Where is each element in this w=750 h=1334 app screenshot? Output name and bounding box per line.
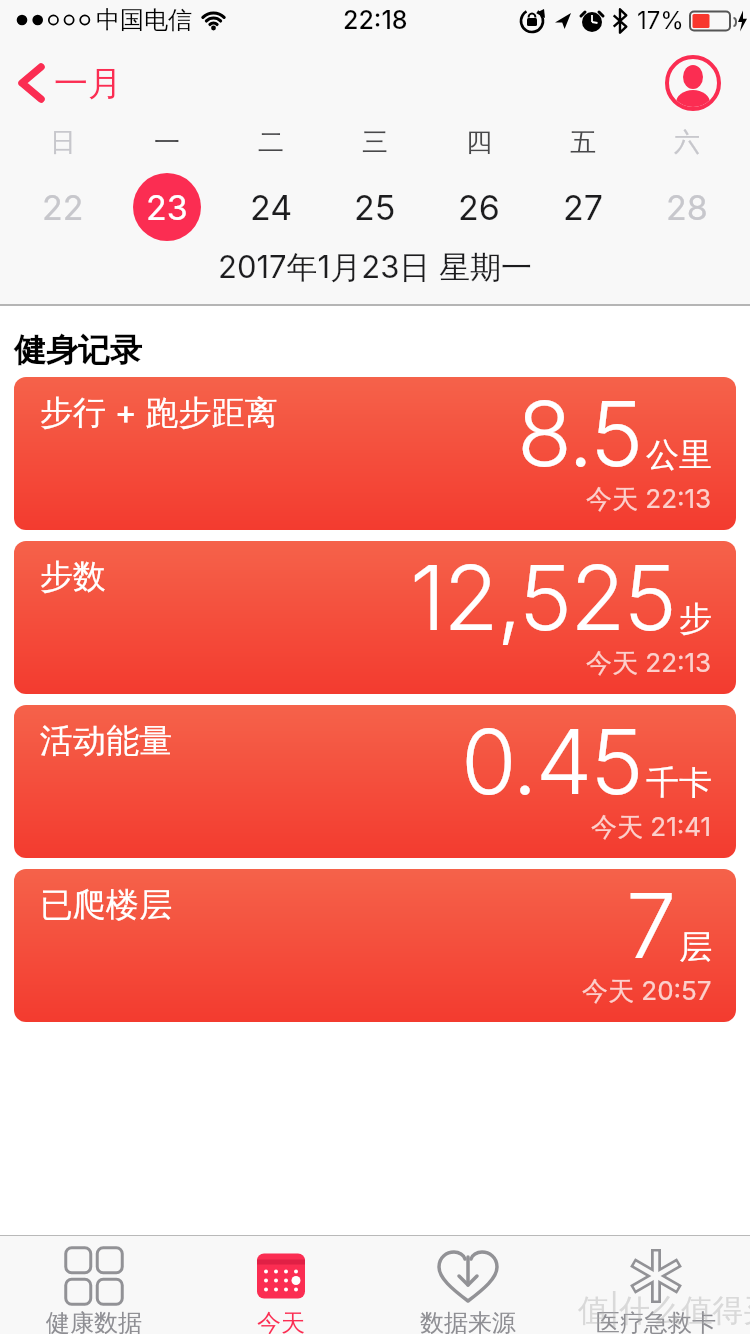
button[interactable]: 已爬楼层: [14, 869, 736, 1022]
staticText: 一月: [54, 62, 122, 105]
button[interactable]: 一月: [18, 58, 122, 108]
button[interactable]: 数据来源: [374, 1236, 562, 1334]
staticText: 四: [466, 126, 492, 158]
staticText: 步: [679, 598, 712, 640]
staticText: 24: [250, 187, 293, 228]
staticText: 28: [666, 187, 708, 228]
staticText: 今天 20:57: [582, 975, 712, 1008]
staticText: 公里: [646, 434, 712, 476]
staticText: 一: [154, 126, 180, 158]
staticText: 22:18: [343, 5, 408, 35]
staticText: 健身记录: [14, 330, 142, 370]
staticText: 25: [354, 187, 396, 228]
button[interactable]: 28: [635, 172, 739, 242]
button[interactable]: 步行 + 跑步距离: [14, 377, 736, 530]
staticText: 活动能量: [40, 720, 172, 762]
staticText: 已爬楼层: [40, 884, 172, 926]
staticText: 8.5: [517, 379, 642, 488]
staticText: 数据来源: [420, 1308, 516, 1334]
staticText: 步行 + 跑步距离: [40, 392, 278, 434]
staticText: 0.45: [461, 707, 642, 816]
staticText: 六: [674, 126, 700, 158]
staticText: 日: [50, 126, 76, 158]
staticText: 步数: [40, 556, 106, 598]
staticText: 27: [563, 187, 603, 228]
staticText: 今天 22:13: [586, 647, 712, 680]
staticText: 千卡: [646, 762, 712, 804]
staticText: 医疗急救卡: [596, 1308, 716, 1334]
staticText: 值|什么值得买: [578, 1291, 750, 1330]
staticText: 今天 22:13: [586, 483, 712, 516]
staticText: 今天: [257, 1308, 305, 1334]
staticText: 12,525: [410, 543, 675, 652]
staticText: 2017年1月23日 星期一: [218, 248, 532, 287]
staticText: 二: [258, 126, 284, 158]
staticText: 17%: [637, 6, 684, 35]
button[interactable]: 23: [115, 172, 219, 242]
staticText: 22: [42, 187, 84, 228]
button[interactable]: [665, 55, 721, 111]
button[interactable]: 今天: [187, 1236, 374, 1334]
staticText: 五: [570, 126, 596, 158]
button[interactable]: 活动能量: [14, 705, 736, 858]
staticText: 26: [458, 187, 500, 228]
staticText: 今天 21:41: [591, 811, 712, 844]
staticText: 23: [146, 187, 188, 228]
button[interactable]: 27: [531, 172, 635, 242]
button[interactable]: 健康数据: [0, 1236, 187, 1334]
staticText: 7: [626, 871, 675, 980]
staticText: 健康数据: [46, 1308, 142, 1334]
button[interactable]: 步数: [14, 541, 736, 694]
button[interactable]: 25: [323, 172, 427, 242]
button[interactable]: 24: [219, 172, 323, 242]
staticText: 三: [362, 126, 388, 158]
staticText: 层: [679, 926, 712, 968]
button[interactable]: 医疗急救卡: [562, 1236, 750, 1334]
staticText: 中国电信: [96, 5, 192, 35]
button[interactable]: 22: [10, 172, 115, 242]
button[interactable]: 26: [427, 172, 531, 242]
